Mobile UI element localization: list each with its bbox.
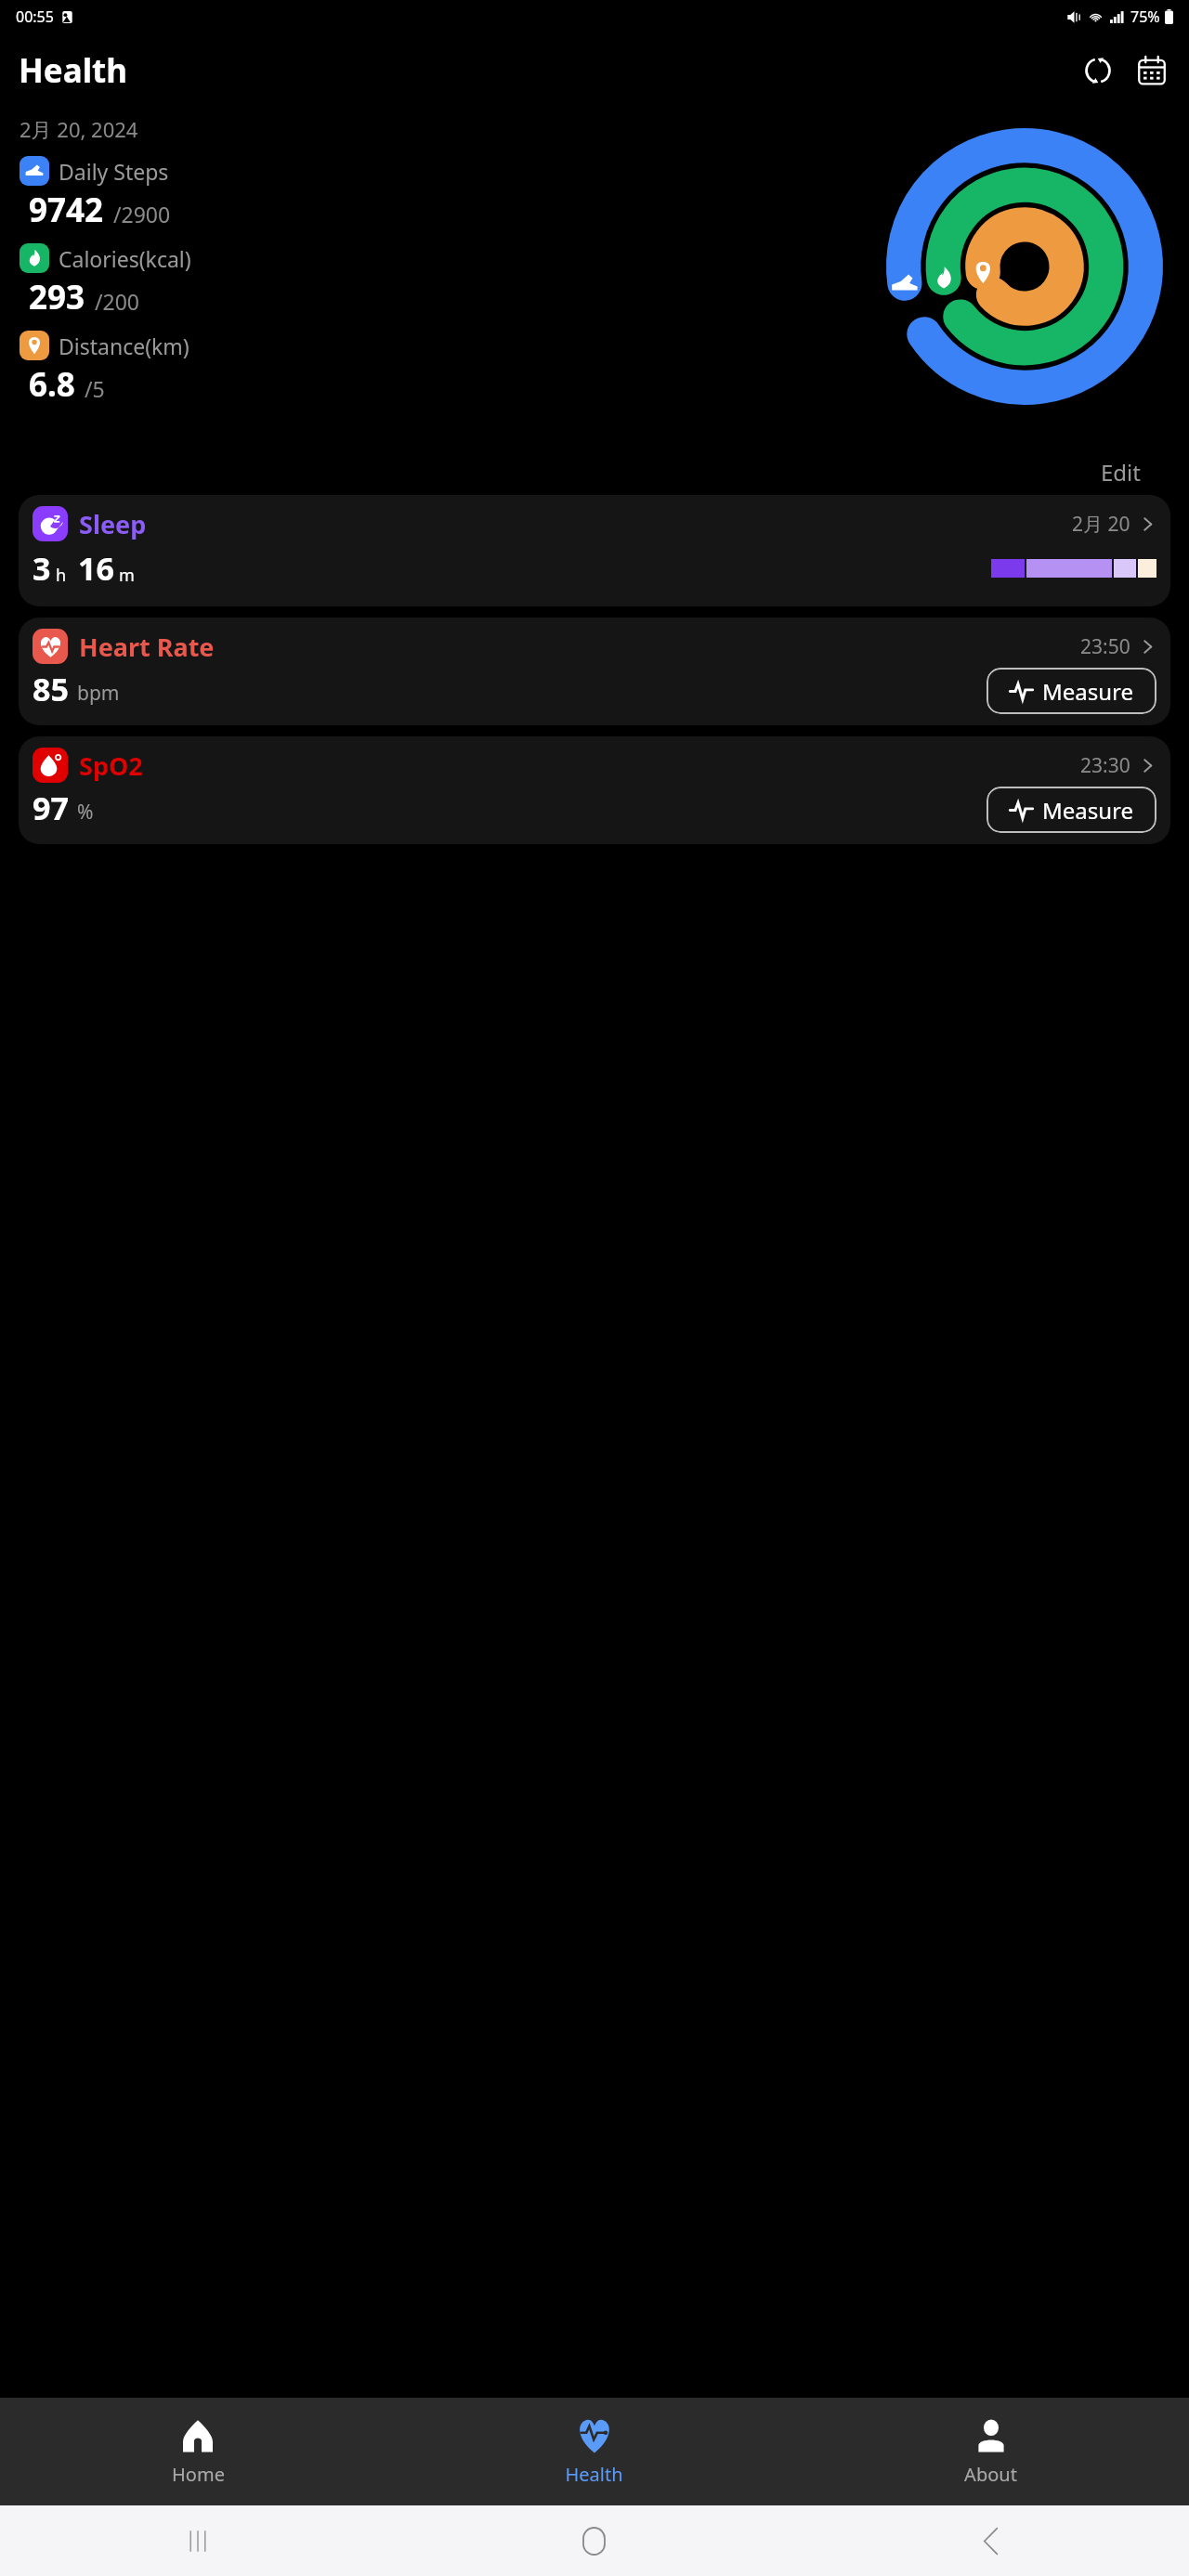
button[interactable]: Sleep <box>19 495 1170 606</box>
staticText: Sleep <box>79 507 147 541</box>
staticText: 75% <box>1130 7 1160 27</box>
staticText: 293 <box>29 275 85 319</box>
staticText: Measure <box>1042 795 1134 826</box>
staticText: Home <box>172 2462 225 2487</box>
staticText: /2900 <box>113 200 171 228</box>
button[interactable]: Edit <box>1101 457 1141 488</box>
staticText: Measure <box>1042 676 1134 707</box>
button[interactable]: SpO2 <box>19 736 1170 844</box>
staticText: 85 <box>33 668 69 710</box>
button[interactable]: Health <box>396 2398 792 2505</box>
button[interactable]: Heart Rate <box>19 618 1170 725</box>
button[interactable]: Back <box>792 2505 1189 2576</box>
button[interactable]: Measure <box>986 668 1156 714</box>
button[interactable]: Calendar <box>1130 48 1174 93</box>
staticText: 9742 <box>29 188 104 232</box>
staticText: 3 <box>33 547 51 590</box>
staticText: Health <box>19 48 128 93</box>
staticText: 23:50 <box>1080 633 1130 660</box>
button[interactable]: Home <box>396 2505 792 2576</box>
button[interactable]: Home <box>0 2398 396 2505</box>
staticText: 00:55 <box>16 7 54 27</box>
staticText: 2月 20 <box>1072 511 1130 538</box>
staticText: Calories(kcal) <box>59 244 191 273</box>
staticText: Health <box>565 2462 623 2487</box>
button[interactable]: Measure <box>986 787 1156 833</box>
staticText: % <box>77 799 94 826</box>
staticText: bpm <box>77 680 120 707</box>
staticText: 2月 20, 2024 <box>20 115 138 143</box>
staticText: 6.8 <box>29 362 75 407</box>
button[interactable]: About <box>792 2398 1189 2505</box>
staticText: 97 <box>33 787 69 829</box>
staticText: About <box>964 2462 1017 2487</box>
staticText: Heart Rate <box>79 630 215 664</box>
staticText: Daily Steps <box>59 157 169 186</box>
staticText: 16 <box>78 547 114 590</box>
staticText: SpO2 <box>79 748 143 783</box>
staticText: 23:30 <box>1080 752 1130 779</box>
staticText: Distance(km) <box>59 332 189 360</box>
staticText: /200 <box>95 287 140 316</box>
button[interactable]: Sync <box>1076 48 1120 93</box>
button[interactable]: Recents <box>0 2505 396 2576</box>
staticText: /5 <box>85 374 105 403</box>
staticText: h <box>56 564 67 587</box>
staticText: m <box>119 564 135 587</box>
